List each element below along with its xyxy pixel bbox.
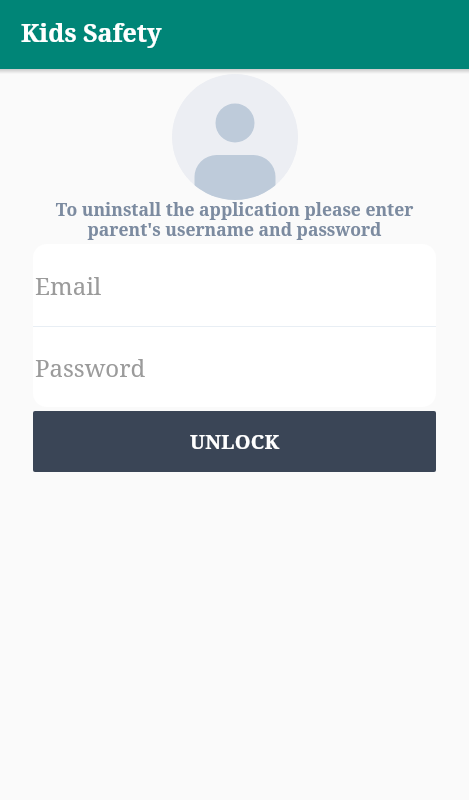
staticText: UNLOCK [190, 428, 280, 455]
button[interactable]: UNLOCK [33, 411, 436, 472]
staticText: Password [35, 351, 146, 384]
staticText: Email [35, 269, 102, 302]
button[interactable]: Password [33, 327, 436, 407]
button[interactable]: Kids Safety [0, 0, 469, 69]
staticText: Kids Safety [21, 15, 162, 49]
staticText: To uninstall the application please ente… [0, 197, 469, 241]
button[interactable]: Email [33, 244, 436, 326]
